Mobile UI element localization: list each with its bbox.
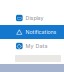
button[interactable]: ◇: [0, 39, 64, 53]
button[interactable]: △: [0, 25, 64, 39]
button[interactable]: ▭: [0, 11, 64, 25]
staticText: My Data: [26, 43, 48, 49]
staticText: ▭: [17, 15, 22, 21]
staticText: ◇: [16, 43, 22, 49]
staticText: Notifications: [26, 29, 57, 35]
staticText: Display: [26, 15, 44, 21]
staticText: △: [16, 28, 23, 36]
